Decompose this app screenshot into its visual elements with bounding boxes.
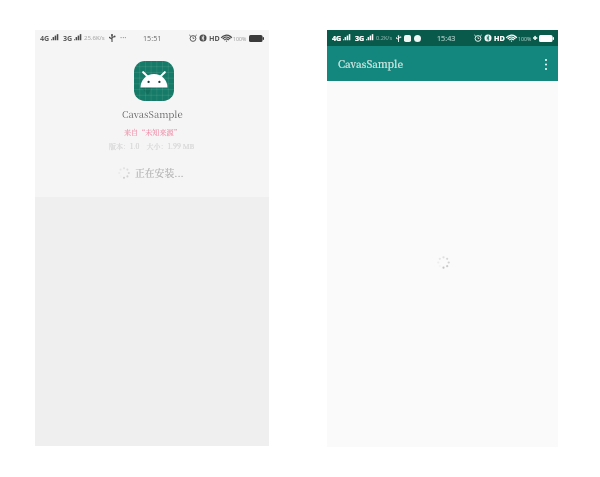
staticText: 3G xyxy=(63,33,73,43)
staticText: ✚ xyxy=(533,35,538,41)
staticText: 正在安装... xyxy=(135,166,184,180)
button[interactable]: Install progress screenshot xyxy=(35,30,269,446)
staticText: 4G xyxy=(40,33,50,43)
staticText: HD xyxy=(209,33,220,43)
staticText: 4G xyxy=(332,33,342,43)
staticText: 100% xyxy=(518,35,532,42)
staticText: CavasSample xyxy=(122,107,183,121)
staticText: 0.2K/s xyxy=(376,34,393,42)
staticText: 3G xyxy=(355,33,365,43)
staticText: CavasSample xyxy=(338,56,404,71)
button[interactable]: CavasSample app screenshot xyxy=(327,30,558,447)
staticText: 15:43 xyxy=(437,33,456,43)
staticText: 100% xyxy=(233,35,247,42)
staticText: 15:51 xyxy=(143,33,162,43)
staticText: HD xyxy=(494,33,505,43)
staticText: 版本：1.0 大小：1.99 MB xyxy=(109,141,195,151)
staticText: ··· xyxy=(120,32,127,43)
staticText: 25.6K/s xyxy=(84,34,105,42)
button[interactable]: More options xyxy=(535,53,557,75)
staticText: 来自“未知来源” xyxy=(124,127,181,137)
